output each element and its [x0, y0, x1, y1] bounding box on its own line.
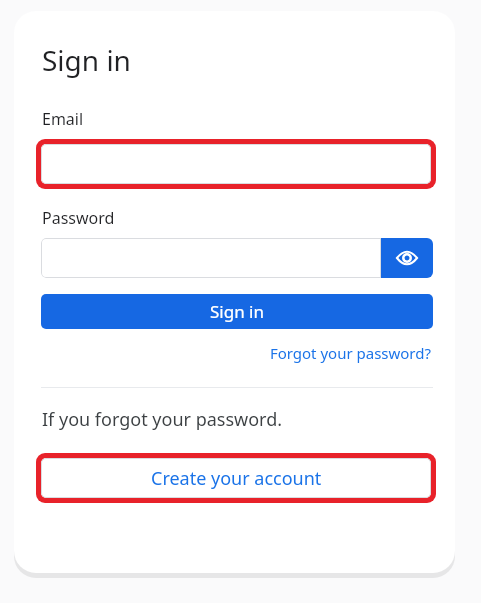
staticText: Sign in: [42, 41, 131, 79]
button[interactable]: Show password: [381, 238, 433, 278]
button[interactable]: Create your account: [41, 458, 431, 498]
staticText: Create your account: [151, 466, 322, 491]
staticText: Forgot your password?: [269, 343, 431, 363]
staticText: Email: [42, 108, 84, 130]
button[interactable]: [41, 238, 381, 278]
staticText: If you forgot your password.: [42, 407, 283, 432]
button[interactable]: Forgot your password?: [267, 341, 433, 365]
staticText: Sign in: [210, 300, 264, 323]
button[interactable]: [41, 144, 431, 184]
button[interactable]: Sign in: [41, 294, 433, 329]
staticText: Password: [42, 207, 115, 229]
